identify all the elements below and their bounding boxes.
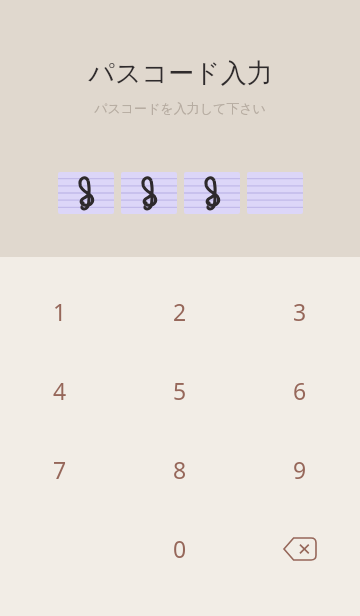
button[interactable]: 4 xyxy=(0,351,120,430)
staticText: 7 xyxy=(53,454,67,485)
staticText: 9 xyxy=(293,454,307,485)
staticText: パスコードを入力して下さい xyxy=(94,100,266,116)
button[interactable]: 8 xyxy=(120,430,240,509)
button[interactable]: 3 xyxy=(240,272,360,351)
staticText: パスコード入力 xyxy=(88,57,273,90)
button[interactable]: 7 xyxy=(0,430,120,509)
staticText: 8 xyxy=(173,454,187,485)
staticText: 4 xyxy=(53,375,67,406)
button[interactable]: 0 xyxy=(120,509,240,588)
button[interactable]: 6 xyxy=(240,351,360,430)
button[interactable]: 5 xyxy=(120,351,240,430)
staticText: 3 xyxy=(293,296,307,327)
button[interactable]: 9 xyxy=(240,430,360,509)
button[interactable]: 1 xyxy=(0,272,120,351)
button[interactable]: Delete xyxy=(240,509,360,588)
staticText: 2 xyxy=(173,296,187,327)
button[interactable]: 2 xyxy=(120,272,240,351)
staticText: 1 xyxy=(53,296,67,327)
staticText: 5 xyxy=(173,375,187,406)
staticText: 6 xyxy=(293,375,307,406)
staticText: 0 xyxy=(173,533,187,564)
